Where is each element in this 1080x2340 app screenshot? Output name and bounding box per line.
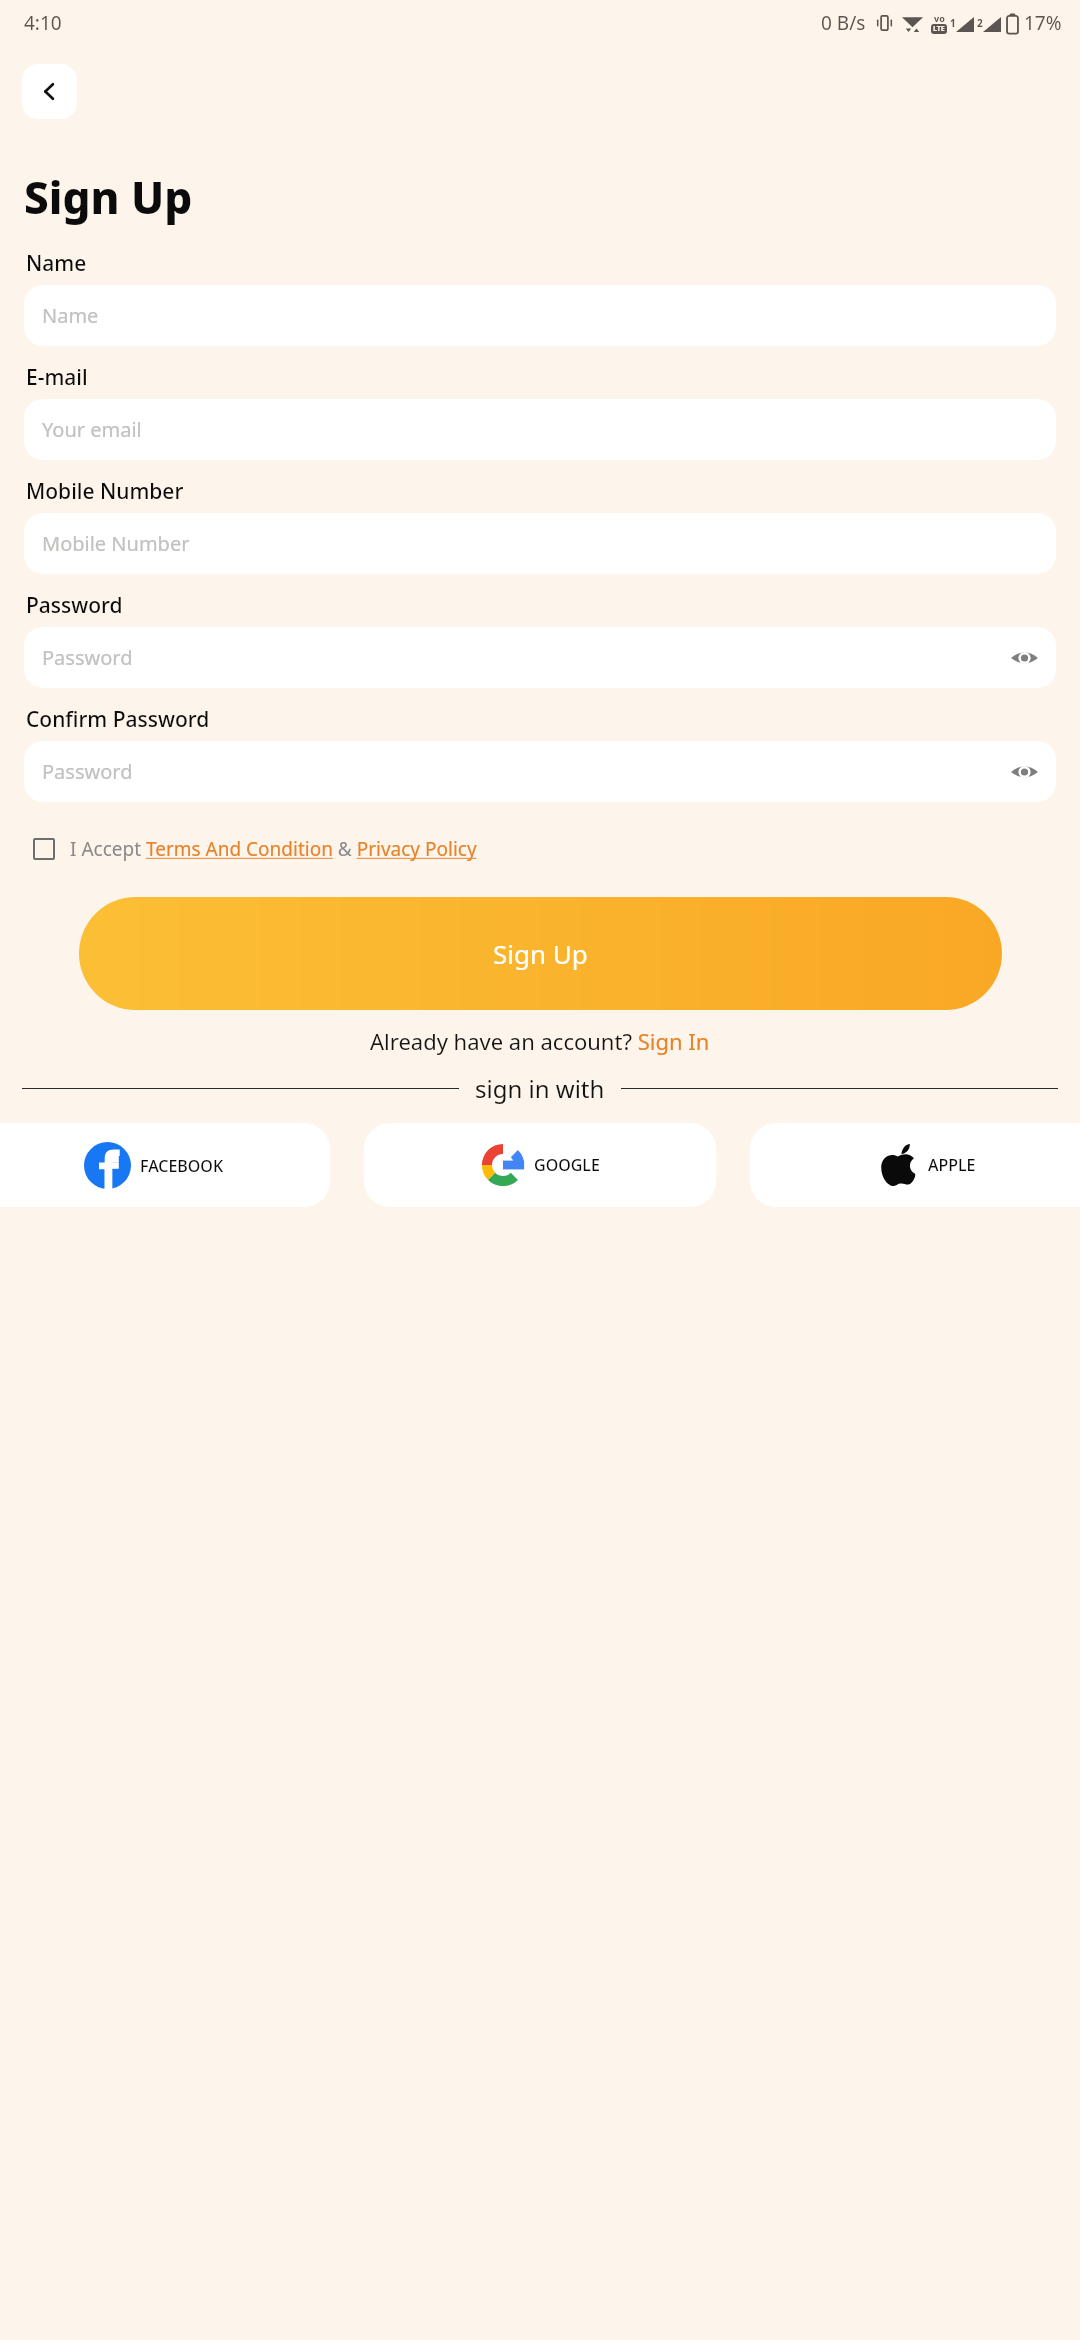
staticText: Password [42, 758, 133, 785]
staticText: Mobile Number [42, 530, 190, 557]
staticText: 17% [1024, 10, 1062, 36]
staticText: Your email [42, 416, 142, 443]
staticText: vo [934, 12, 945, 24]
button[interactable]: Password [24, 741, 1056, 802]
button[interactable]: Already have an account? Sign In [370, 1026, 710, 1056]
button[interactable]: Name [24, 285, 1056, 346]
button[interactable]: Accept terms [24, 829, 64, 869]
staticText: 2 [977, 16, 983, 30]
button[interactable]: Back [22, 64, 77, 119]
button[interactable]: FACEBOOK [0, 1123, 330, 1207]
staticText: Mobile Number [26, 477, 184, 506]
button[interactable]: APPLE [750, 1123, 1080, 1207]
staticText: Sign Up [493, 936, 588, 971]
staticText: E-mail [26, 363, 88, 392]
staticText: FACEBOOK [140, 1155, 224, 1177]
staticText: APPLE [928, 1154, 976, 1176]
button[interactable]: Sign Up [79, 897, 1002, 1010]
staticText: Password [42, 644, 133, 671]
button[interactable]: Toggle password visibility [1011, 763, 1038, 781]
staticText: 0 B/s [821, 10, 866, 36]
staticText: Password [26, 591, 123, 620]
button[interactable]: I Accept Terms And Condition & Privacy P… [70, 836, 477, 862]
staticText: Name [42, 302, 99, 329]
staticText: Sign Up [24, 167, 193, 227]
button[interactable]: Your email [24, 399, 1056, 460]
staticText: 4:10 [24, 10, 62, 36]
button[interactable]: GOOGLE [364, 1123, 716, 1207]
staticText: Name [26, 249, 87, 278]
button[interactable]: Toggle password visibility [1011, 649, 1038, 667]
staticText: LTE [933, 24, 945, 34]
button[interactable]: Mobile Number [24, 513, 1056, 574]
staticText: GOOGLE [534, 1154, 600, 1176]
staticText: 1 [950, 16, 956, 30]
staticText: sign in with [475, 1072, 605, 1105]
staticText: Confirm Password [26, 705, 210, 734]
button[interactable]: Password [24, 627, 1056, 688]
